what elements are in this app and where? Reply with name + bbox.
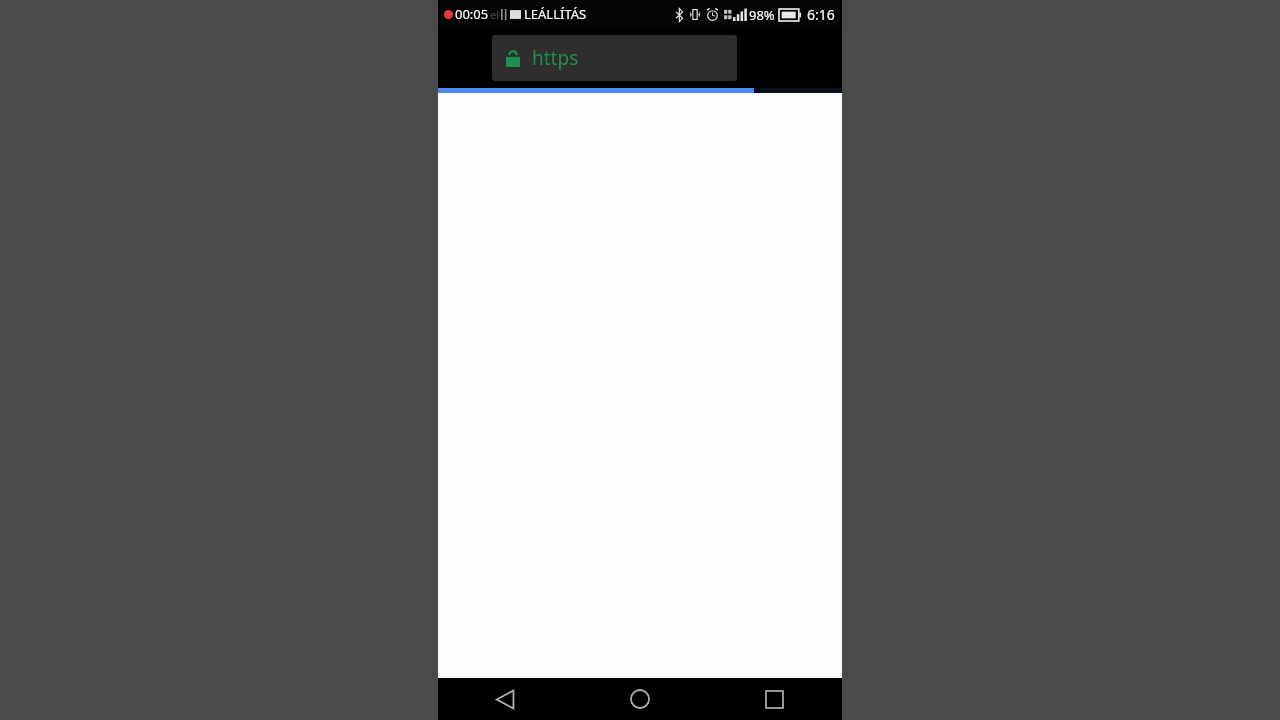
staticText: el (490, 7, 500, 22)
staticText: 00:05 (455, 5, 489, 23)
button[interactable]: Home (572, 678, 707, 720)
button[interactable]: Secure connection (492, 35, 737, 81)
staticText: 98% (749, 6, 775, 24)
other: Secure connection (506, 50, 520, 67)
staticText: https (532, 45, 579, 71)
button[interactable]: Recent apps (707, 678, 842, 720)
button[interactable]: Back (438, 678, 572, 720)
staticText: LEÁLLÍTÁS (524, 5, 587, 23)
staticText: 6:16 (807, 5, 835, 24)
